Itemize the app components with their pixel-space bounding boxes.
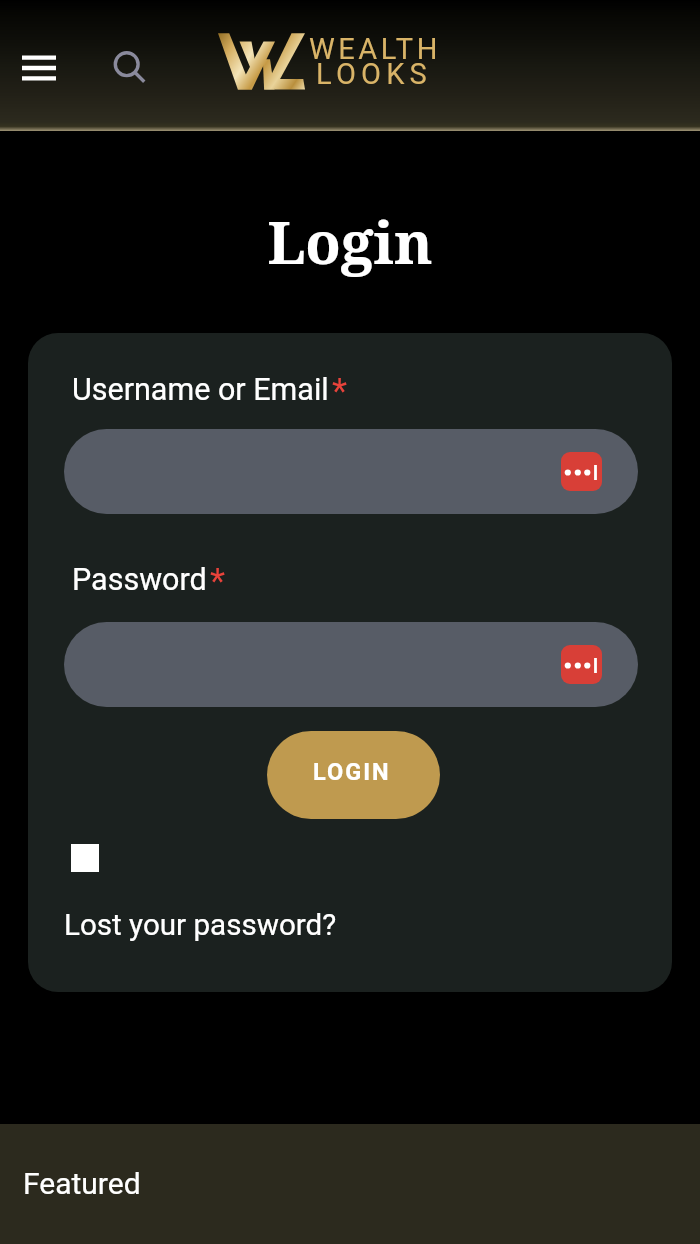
staticText: Lost your password? bbox=[64, 908, 337, 943]
button[interactable]: Autofill password bbox=[64, 429, 638, 514]
staticText: Password bbox=[72, 562, 207, 598]
staticText: Featured bbox=[23, 1166, 141, 1201]
staticText: Login bbox=[0, 202, 700, 281]
staticText: LOGIN bbox=[313, 758, 391, 786]
button[interactable]: Autofill password bbox=[64, 622, 638, 707]
staticText: LOOKS bbox=[316, 57, 433, 91]
button[interactable]: Autofill password bbox=[561, 645, 602, 684]
staticText: * bbox=[332, 371, 348, 412]
button[interactable]: Lost your password? bbox=[64, 908, 337, 943]
button[interactable]: Autofill password bbox=[561, 452, 602, 491]
button[interactable]: Menu bbox=[12, 38, 66, 92]
staticText: WEALTH bbox=[309, 32, 441, 66]
staticText: * bbox=[210, 561, 226, 602]
staticText: Username or Email bbox=[72, 372, 329, 408]
button[interactable]: LOGIN bbox=[267, 731, 440, 819]
button[interactable]: Search bbox=[102, 40, 152, 90]
